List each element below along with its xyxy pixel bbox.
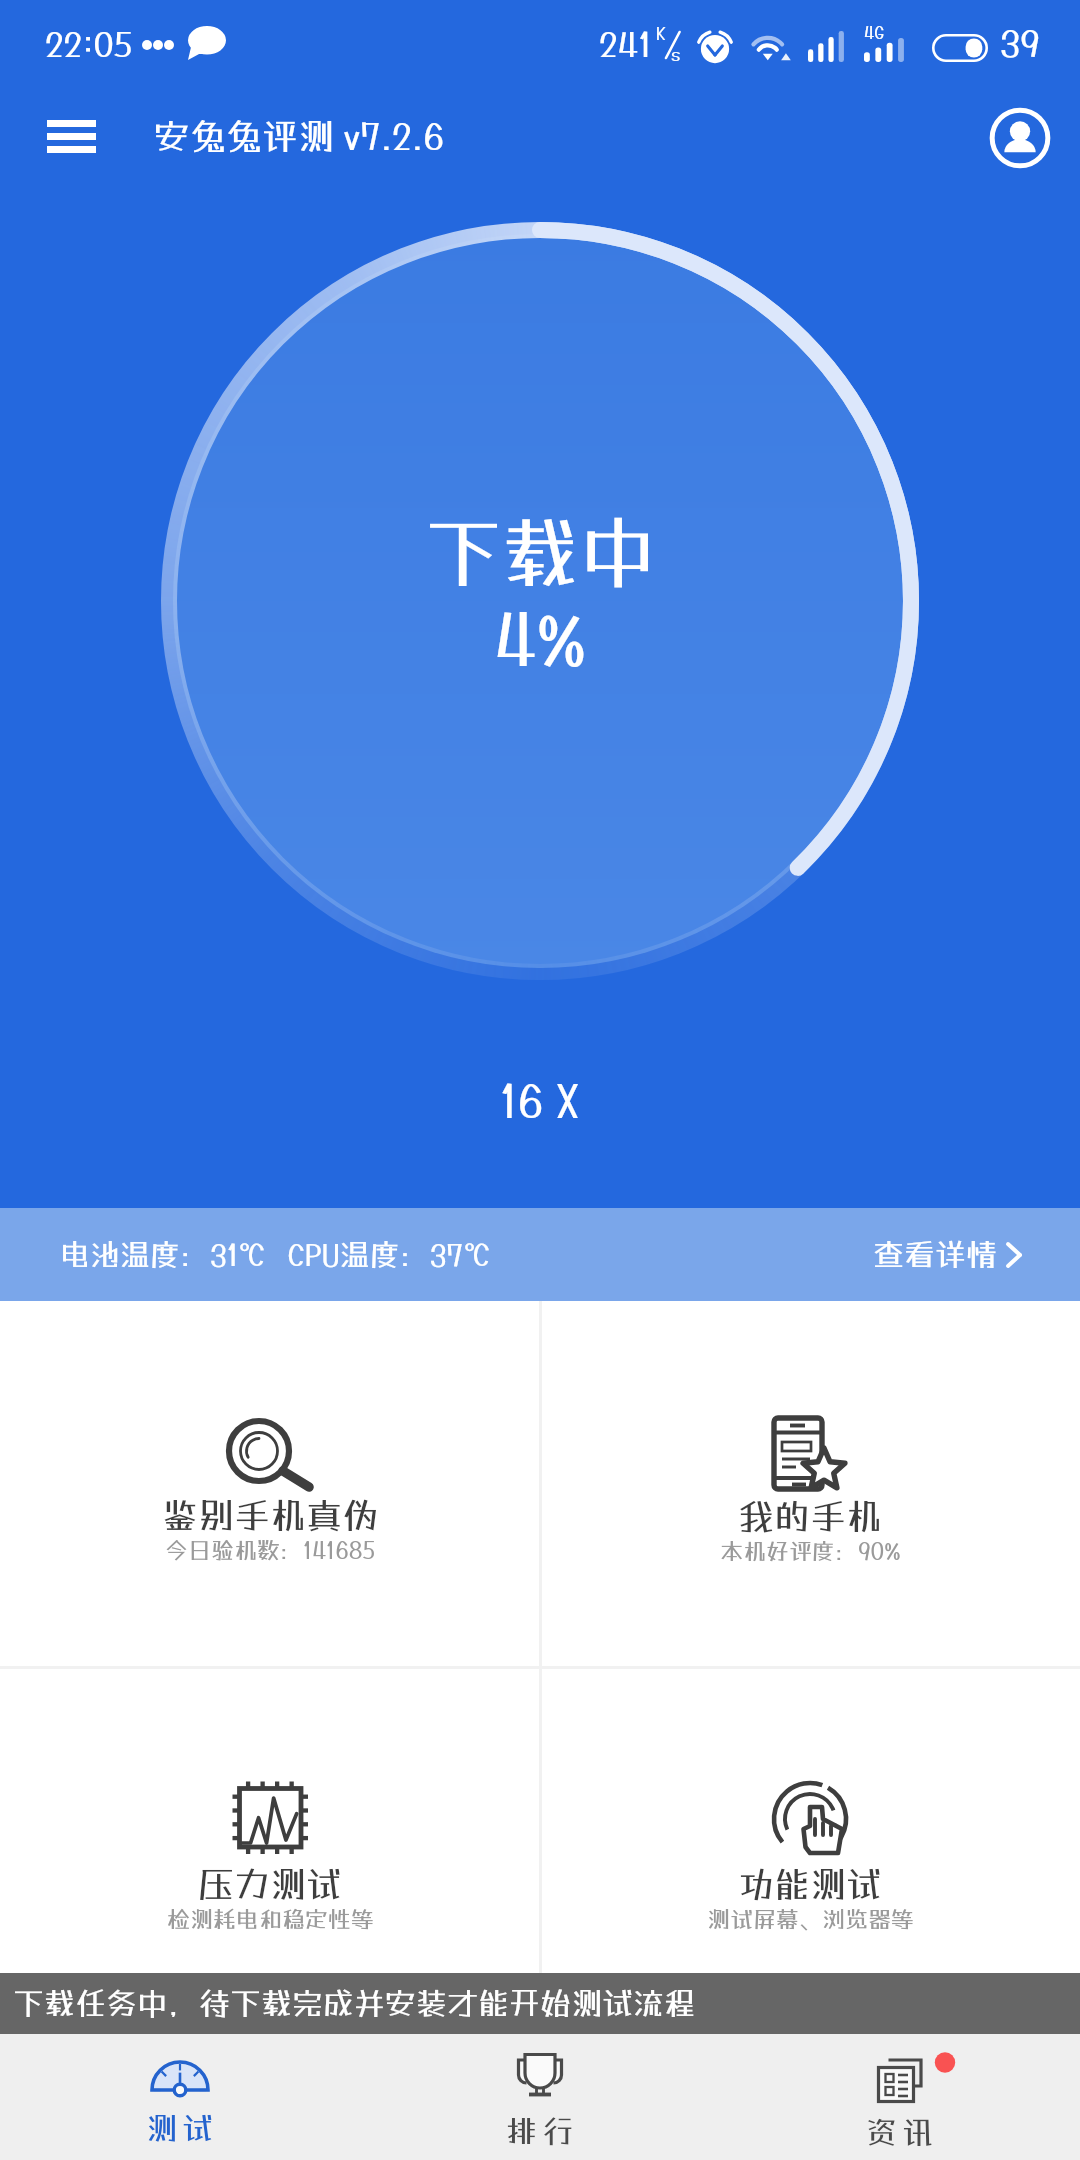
staticText: K bbox=[656, 23, 666, 43]
staticText: 下载任务中，待下载完成并安装才能开始测试流程 bbox=[13, 1985, 695, 2022]
button[interactable]: 压力测试 bbox=[0, 1667, 540, 2033]
button[interactable]: 排行 bbox=[360, 2034, 720, 2160]
staticText: 241 bbox=[599, 24, 652, 64]
staticText: 排行 bbox=[506, 2113, 578, 2150]
staticText: s bbox=[671, 44, 681, 64]
button[interactable]: 测试 bbox=[0, 2034, 360, 2160]
staticText: 22:05 bbox=[45, 24, 133, 64]
staticText: 压力测试 bbox=[198, 1863, 343, 1905]
button[interactable]: Account bbox=[982, 100, 1058, 176]
staticText: 功能测试 bbox=[738, 1863, 883, 1905]
staticText: 4% bbox=[494, 597, 587, 680]
button[interactable]: 我的手机 bbox=[540, 1301, 1080, 1667]
staticText: 安兔兔评测 v7.2.6 bbox=[154, 115, 444, 157]
staticText: 16 X bbox=[500, 1075, 581, 1127]
staticText: 下载中 bbox=[425, 506, 656, 597]
staticText: 4G bbox=[864, 22, 885, 42]
staticText: 我的手机 bbox=[738, 1495, 883, 1537]
button[interactable]: 资讯 bbox=[720, 2034, 1080, 2160]
staticText: 资讯 bbox=[866, 2114, 938, 2151]
staticText: 鉴别手机真伪 bbox=[162, 1494, 379, 1536]
button[interactable]: 功能测试 bbox=[540, 1667, 1080, 2033]
button[interactable]: 电池温度：31℃ CPU温度：37℃ bbox=[0, 1208, 1080, 1301]
staticText: 检测耗电和稳定性等 bbox=[167, 1905, 374, 1932]
staticText: 电池温度：31℃ CPU温度：37℃ bbox=[60, 1237, 491, 1272]
staticText: 查看详情 bbox=[873, 1236, 997, 1273]
staticText: 测试 bbox=[146, 2110, 218, 2147]
staticText: 本机好评度：90% bbox=[720, 1537, 901, 1564]
staticText: 39 bbox=[1000, 22, 1040, 64]
staticText: 今日验机数：141685 bbox=[165, 1536, 375, 1563]
button[interactable]: Menu bbox=[28, 98, 114, 174]
button[interactable]: 鉴别手机真伪 bbox=[0, 1301, 540, 1667]
staticText: 测试屏幕、浏览器等 bbox=[707, 1905, 914, 1932]
